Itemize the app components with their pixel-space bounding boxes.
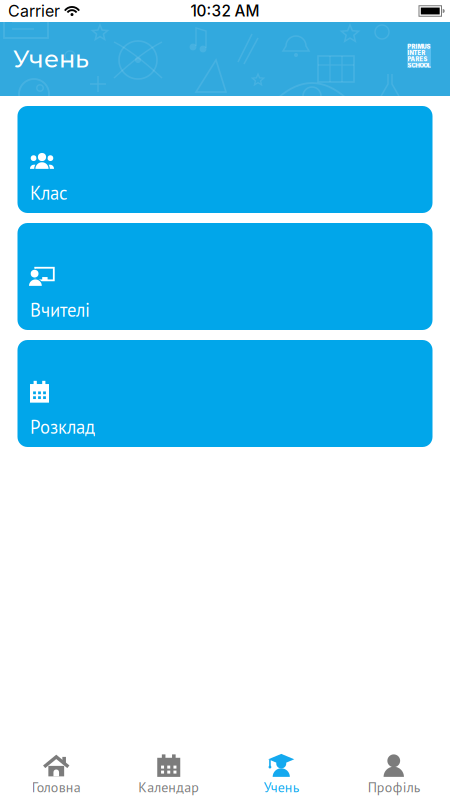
staticText: Carrier [8, 1, 60, 21]
staticText: Календар [138, 778, 199, 796]
staticText: 10:32 AM [190, 2, 259, 20]
staticText: Профіль [368, 778, 420, 796]
staticText: SCHOOL [407, 63, 430, 68]
staticText: Учень [13, 44, 89, 74]
staticText: INTER [407, 50, 425, 56]
staticText: Вчителі [30, 298, 90, 322]
staticText: Учень [264, 778, 299, 796]
button[interactable]: Головна [0, 754, 112, 796]
button[interactable]: Профіль [337, 754, 450, 796]
button[interactable]: Розклад [17, 340, 432, 447]
staticText: Клас [30, 181, 67, 205]
button[interactable]: Учень [225, 753, 337, 796]
button[interactable]: Календар [112, 754, 225, 796]
staticText: Головна [32, 778, 81, 796]
staticText: PARES [407, 56, 427, 62]
button[interactable]: Клас [17, 106, 432, 213]
staticText: PRIMUS [407, 44, 430, 49]
button[interactable]: Вчителі [17, 223, 432, 330]
staticText: Розклад [30, 415, 95, 439]
